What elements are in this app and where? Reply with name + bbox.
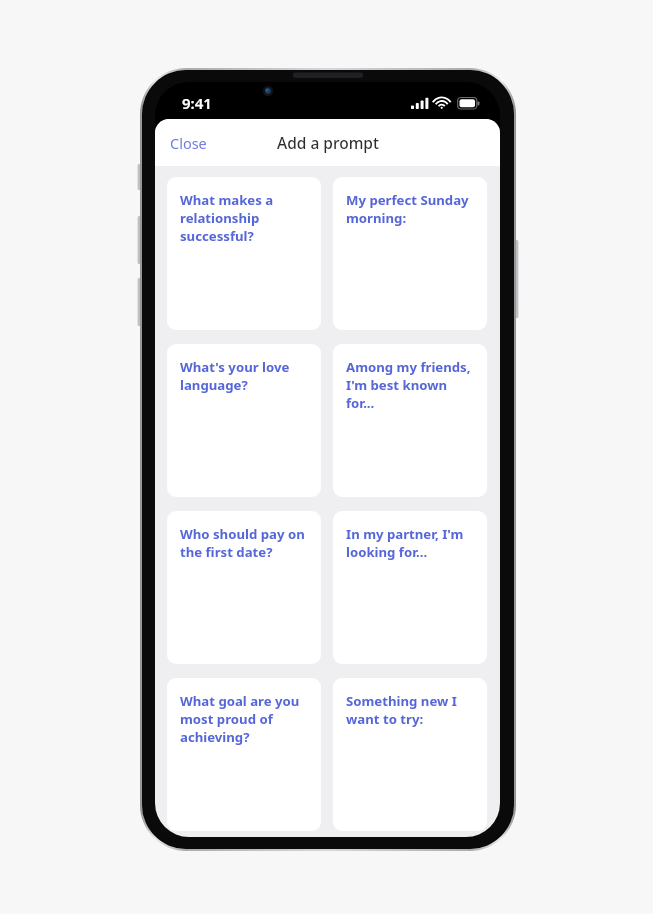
staticText: Among my friends, I'm best known for... <box>346 358 477 412</box>
staticText: In my partner, I'm looking for... <box>346 525 477 561</box>
staticText: What makes a relationship successful? <box>180 191 311 245</box>
button[interactable]: Close <box>155 123 222 163</box>
staticText: 9:41 <box>182 93 212 113</box>
staticText: Who should pay on the first date? <box>180 525 311 561</box>
staticText: Close <box>170 133 207 153</box>
staticText: What's your love language? <box>180 358 311 394</box>
button[interactable]: What makes a relationship successful? <box>167 177 321 330</box>
button[interactable]: In my partner, I'm looking for... <box>333 511 487 664</box>
button[interactable]: What's your love language? <box>167 344 321 497</box>
button[interactable]: My perfect Sunday morning: <box>333 177 487 330</box>
staticText: What goal are you most proud of achievin… <box>180 692 311 746</box>
button[interactable]: Among my friends, I'm best known for... <box>333 344 487 497</box>
staticText: Add a prompt <box>277 132 379 153</box>
staticText: Something new I want to try: <box>346 692 477 728</box>
button[interactable]: Something new I want to try: <box>333 678 487 831</box>
button[interactable]: Who should pay on the first date? <box>167 511 321 664</box>
staticText: My perfect Sunday morning: <box>346 191 477 227</box>
button[interactable]: What goal are you most proud of achievin… <box>167 678 321 831</box>
